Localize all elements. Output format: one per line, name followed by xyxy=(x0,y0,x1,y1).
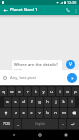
staticText: m xyxy=(62,110,66,116)
staticText: p xyxy=(74,89,77,95)
staticText: i xyxy=(59,89,61,95)
staticText: u xyxy=(50,89,53,95)
staticText: q xyxy=(2,89,5,95)
staticText: g xyxy=(38,99,41,105)
button[interactable]: More options xyxy=(72,7,79,14)
staticText: x xyxy=(22,110,25,116)
button[interactable]: Hide keyboard xyxy=(0,130,27,140)
staticText: l xyxy=(71,99,73,105)
button[interactable]: a xyxy=(4,97,11,107)
button[interactable]: Backspace xyxy=(68,108,79,118)
button[interactable]: z xyxy=(12,108,19,118)
button[interactable]: c xyxy=(28,108,35,118)
staticText: d xyxy=(22,99,25,105)
button[interactable]: . xyxy=(59,119,66,129)
staticText: f xyxy=(31,99,33,105)
button[interactable]: Send xyxy=(67,73,77,83)
staticText: c xyxy=(30,110,33,116)
button[interactable]: Home xyxy=(27,130,53,140)
button[interactable]: Shift xyxy=(0,108,11,118)
staticText: e xyxy=(18,89,21,95)
button[interactable]: Recent apps xyxy=(53,130,79,140)
staticText: Where are the details? xyxy=(14,62,58,68)
button[interactable]: g xyxy=(36,97,43,107)
staticText: w xyxy=(10,89,14,95)
staticText: h xyxy=(46,99,49,105)
button[interactable]: j xyxy=(52,97,59,107)
button[interactable]: , xyxy=(14,119,21,129)
button[interactable]: w xyxy=(8,87,15,96)
staticText: V xyxy=(69,61,73,68)
staticText: Planet Nord 1 xyxy=(10,7,38,13)
button[interactable]: l xyxy=(68,97,75,107)
staticText: t xyxy=(35,89,37,95)
staticText: o xyxy=(66,89,69,95)
button[interactable]: r xyxy=(24,87,31,96)
button[interactable]: e xyxy=(16,87,23,96)
button[interactable]: b xyxy=(44,108,51,118)
staticText: English xyxy=(35,122,45,126)
button[interactable]: q xyxy=(0,87,7,96)
staticText: k xyxy=(62,99,65,105)
button[interactable]: f xyxy=(28,97,35,107)
button[interactable]: v xyxy=(36,108,43,118)
button[interactable]: Emoji xyxy=(1,74,9,82)
button[interactable]: s xyxy=(12,97,19,107)
button[interactable]: y xyxy=(40,87,47,96)
staticText: . xyxy=(62,121,64,127)
button[interactable]: n xyxy=(52,108,59,118)
staticText: y xyxy=(42,89,45,95)
button[interactable]: h xyxy=(44,97,51,107)
staticText: n xyxy=(54,110,57,116)
staticText: s xyxy=(14,99,17,105)
staticText: Any, last post xyxy=(10,75,37,81)
staticText: z xyxy=(15,110,17,116)
button[interactable]: English xyxy=(22,119,58,129)
staticText: v xyxy=(38,110,41,116)
button[interactable]: x xyxy=(20,108,27,118)
button[interactable]: V xyxy=(66,60,75,69)
staticText: ?123 xyxy=(3,122,10,126)
button[interactable]: t xyxy=(32,87,39,96)
staticText: , xyxy=(17,121,19,127)
button[interactable]: Back xyxy=(0,5,10,15)
staticText: a xyxy=(6,99,9,105)
button[interactable]: Enter xyxy=(67,119,79,129)
staticText: b xyxy=(46,110,49,116)
button[interactable]: k xyxy=(60,97,67,107)
staticText: j xyxy=(55,99,57,105)
button[interactable]: i xyxy=(56,87,63,96)
button[interactable]: Call xyxy=(64,6,72,14)
button[interactable]: u xyxy=(48,87,55,96)
button[interactable]: Where are the details? xyxy=(12,60,62,70)
staticText: 12:30 xyxy=(67,0,77,5)
button[interactable]: p xyxy=(72,87,79,96)
button[interactable]: o xyxy=(64,87,71,96)
button[interactable]: ?123 xyxy=(0,119,13,129)
button[interactable]: m xyxy=(60,108,67,118)
staticText: r xyxy=(27,89,29,95)
button[interactable]: d xyxy=(20,97,27,107)
staticText: 12:05 xyxy=(14,69,23,70)
